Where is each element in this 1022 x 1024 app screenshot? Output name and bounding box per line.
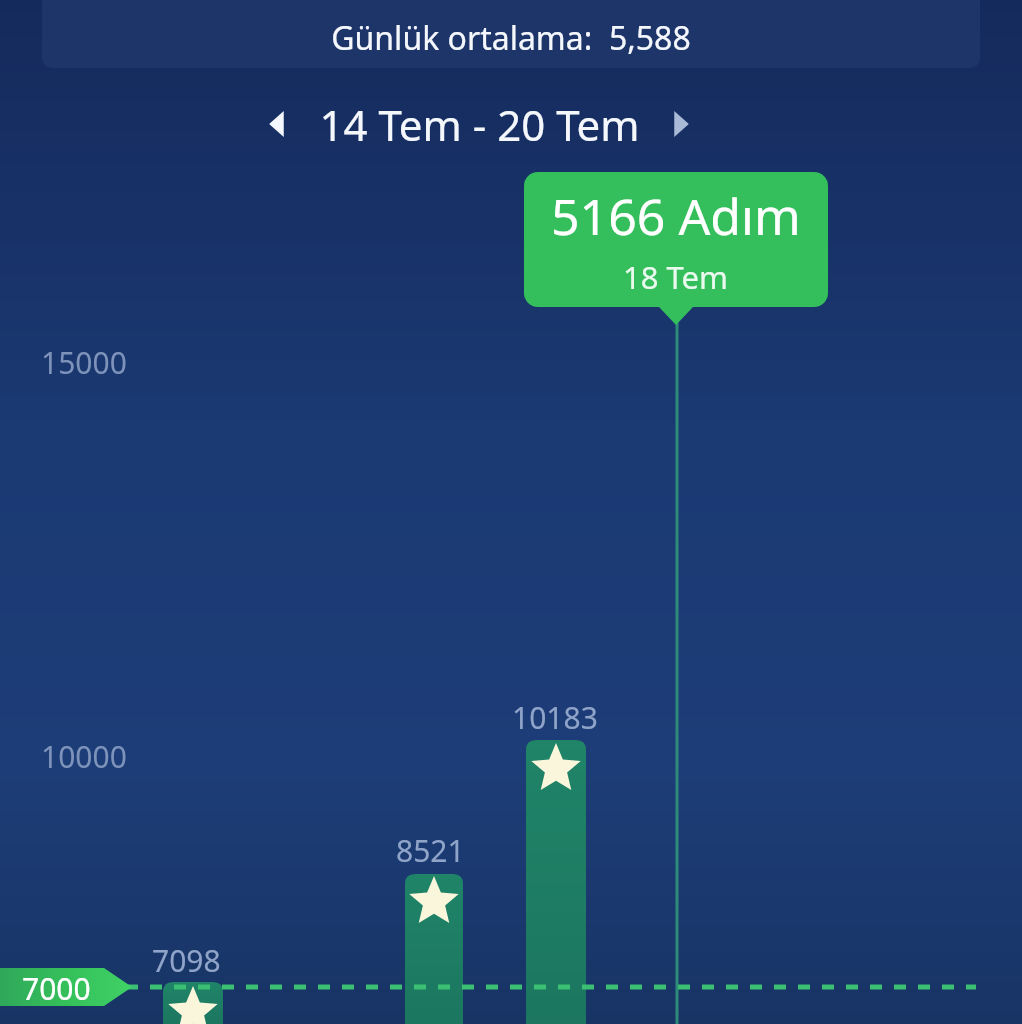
staticText: 14 Tem - 20 Tem bbox=[319, 96, 640, 152]
staticText: 8521 bbox=[396, 830, 465, 871]
button[interactable]: 14 Tem - 20 Tem bbox=[301, 96, 657, 152]
staticText: 10000 bbox=[41, 736, 127, 777]
staticText: Günlük ortalama: 5,588 bbox=[331, 16, 691, 60]
button[interactable]: 5166 Adım bbox=[524, 172, 828, 307]
staticText: 18 Tem bbox=[623, 256, 729, 298]
button[interactable]: 7000 bbox=[0, 968, 132, 1006]
button[interactable]: Günlük ortalama: 5,588 bbox=[42, 0, 980, 68]
staticText: 15000 bbox=[41, 342, 127, 383]
staticText: 10183 bbox=[512, 697, 598, 738]
staticText: 7098 bbox=[152, 940, 221, 981]
staticText: 5166 Adım bbox=[551, 182, 801, 250]
staticText: 7000 bbox=[22, 968, 91, 1006]
button[interactable]: Sonraki hafta bbox=[657, 101, 703, 147]
button[interactable]: Önceki hafta bbox=[255, 101, 301, 147]
